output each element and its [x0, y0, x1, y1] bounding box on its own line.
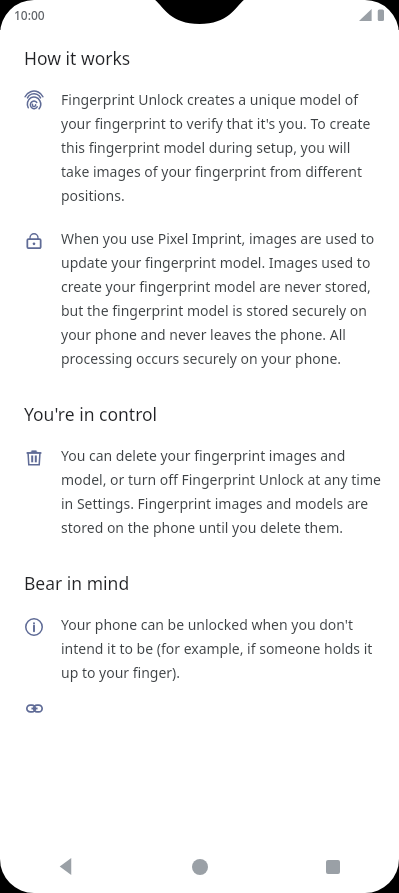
staticText: How it works: [24, 46, 131, 70]
staticText: Bear in mind: [24, 571, 130, 595]
staticText: You can delete your fingerprint images a…: [61, 446, 381, 537]
other: Information: [25, 618, 43, 636]
other: Fingerprint: [25, 93, 43, 111]
staticText: When you use Pixel Imprint, images are u…: [61, 229, 381, 368]
other: Delete: [25, 449, 43, 467]
button[interactable]: Learn more link: [24, 698, 44, 718]
button[interactable]: Recent apps: [266, 840, 399, 893]
button[interactable]: Back: [0, 840, 133, 893]
staticText: Your phone can be unlocked when you don'…: [61, 615, 381, 682]
staticText: Fingerprint Unlock creates a unique mode…: [61, 90, 381, 205]
staticText: You're in control: [24, 402, 158, 426]
button[interactable]: Home: [133, 840, 266, 893]
staticText: 10:00: [14, 7, 45, 23]
other: Security: [25, 232, 43, 250]
